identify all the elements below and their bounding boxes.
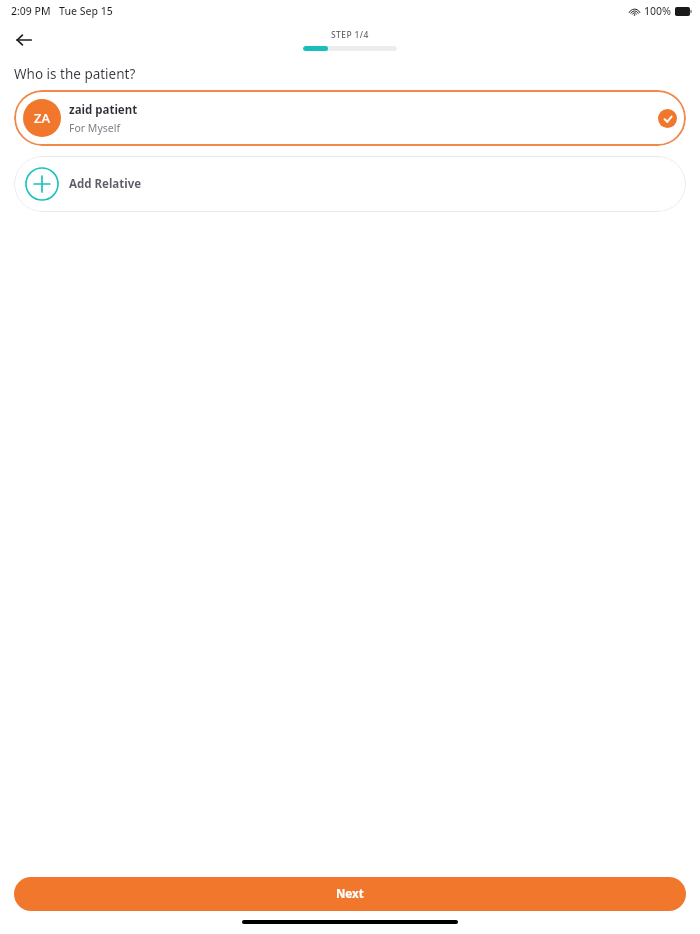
staticText: Add Relative — [69, 176, 142, 192]
button[interactable]: Add Relative — [14, 156, 686, 212]
button[interactable]: Back — [6, 22, 42, 58]
staticText: STEP 1/4 — [331, 29, 369, 41]
button[interactable]: ZA — [14, 90, 686, 146]
button[interactable]: Next — [14, 877, 686, 911]
staticText: ZA — [34, 109, 50, 127]
staticText: 2:09 PM — [11, 4, 51, 18]
staticText: For Myself — [69, 121, 121, 135]
other: Selected — [658, 109, 677, 128]
staticText: 100% — [644, 4, 671, 18]
staticText: Next — [336, 886, 364, 902]
staticText: Who is the patient? — [14, 65, 136, 83]
staticText: Tue Sep 15 — [59, 4, 113, 18]
staticText: zaid patient — [69, 102, 138, 118]
